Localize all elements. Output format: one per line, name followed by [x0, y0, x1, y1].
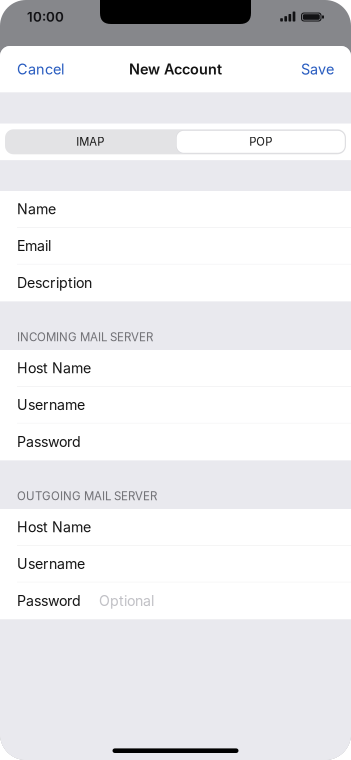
button[interactable]: Email: [0, 228, 351, 264]
staticText: Password: [17, 433, 81, 450]
button[interactable]: Username: [0, 546, 351, 582]
button[interactable]: Name: [0, 191, 351, 228]
button[interactable]: Cancel: [17, 50, 76, 88]
button[interactable]: POP: [175, 129, 346, 154]
staticText: Name: [17, 201, 56, 218]
staticText: Host Name: [17, 518, 91, 536]
staticText: IMAP: [76, 135, 104, 149]
button[interactable]: Host Name: [0, 509, 351, 546]
button[interactable]: Description: [0, 264, 351, 301]
button[interactable]: Password: [0, 423, 351, 460]
staticText: 10:00: [27, 9, 64, 25]
button[interactable]: Save: [289, 50, 334, 88]
staticText: Save: [301, 60, 334, 78]
staticText: Optional: [99, 592, 154, 609]
staticText: Username: [17, 555, 85, 572]
staticText: New Account: [129, 60, 222, 78]
button[interactable]: IMAP: [5, 129, 175, 154]
staticText: Description: [17, 274, 92, 291]
staticText: OUTGOING MAIL SERVER: [17, 489, 157, 503]
staticText: Email: [17, 237, 51, 254]
staticText: Password: [17, 592, 81, 609]
button[interactable]: Host Name: [0, 350, 351, 387]
staticText: Username: [17, 396, 85, 413]
button[interactable]: Username: [0, 387, 351, 423]
staticText: Cancel: [17, 60, 64, 78]
staticText: INCOMING MAIL SERVER: [17, 330, 153, 344]
staticText: Host Name: [17, 360, 91, 377]
button[interactable]: Password: [0, 582, 351, 619]
staticText: POP: [249, 135, 272, 149]
